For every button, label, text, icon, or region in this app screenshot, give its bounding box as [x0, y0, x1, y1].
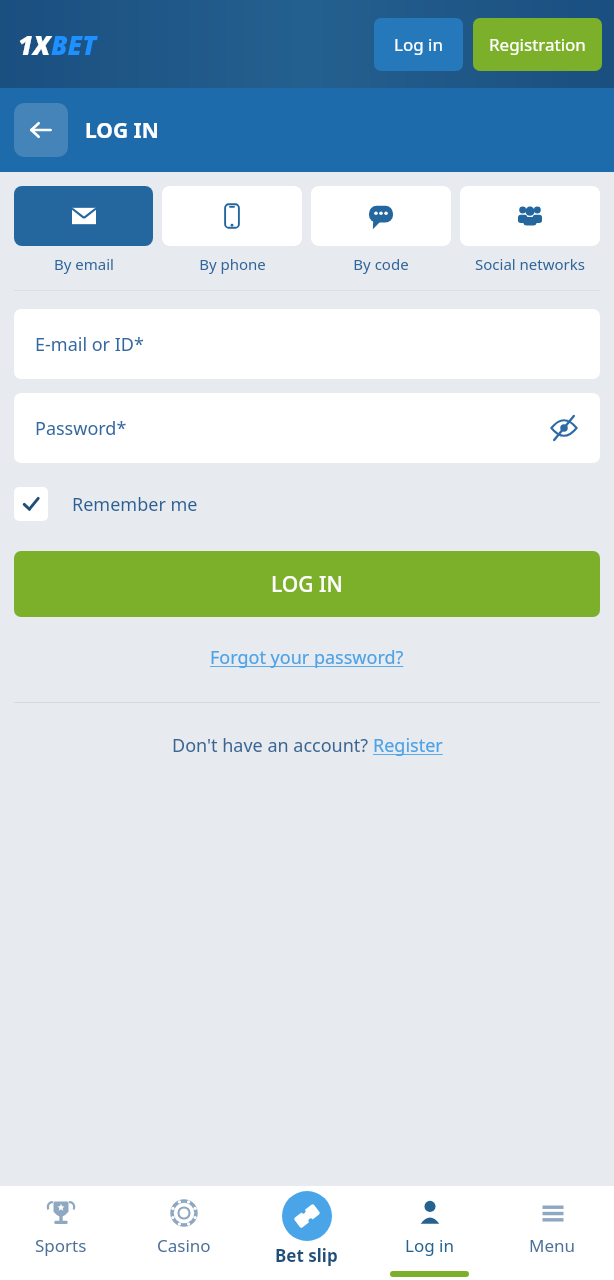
- button[interactable]: By email: [14, 186, 153, 274]
- staticText: BET: [51, 27, 97, 62]
- button[interactable]: Show password: [544, 408, 584, 448]
- staticText: Log in: [394, 33, 443, 56]
- button[interactable]: Log in: [368, 1186, 491, 1280]
- button[interactable]: Casino: [122, 1186, 245, 1280]
- button[interactable]: Back: [14, 103, 68, 157]
- button[interactable]: Log in: [374, 18, 463, 71]
- staticText: Social networks: [475, 254, 585, 274]
- button[interactable]: Bet slip: [245, 1186, 368, 1280]
- staticText: Log in: [405, 1234, 454, 1257]
- staticText: Register: [373, 733, 443, 758]
- staticText: Forgot your password?: [210, 645, 404, 670]
- button[interactable]: Register: [373, 733, 443, 758]
- staticText: Remember me: [72, 492, 198, 517]
- staticText: Registration: [489, 33, 586, 56]
- button[interactable]: Menu: [491, 1186, 614, 1280]
- staticText: By code: [353, 254, 409, 274]
- button[interactable]: LOG IN: [14, 551, 600, 617]
- staticText: Password*: [35, 416, 127, 441]
- button[interactable]: By code: [311, 186, 451, 274]
- button[interactable]: Password*: [14, 393, 600, 463]
- staticText: Casino: [157, 1234, 211, 1257]
- staticText: Don't have an account?: [172, 733, 373, 758]
- staticText: 1X: [18, 27, 51, 62]
- staticText: By phone: [199, 254, 266, 274]
- staticText: Sports: [35, 1234, 87, 1257]
- button[interactable]: Registration: [473, 18, 602, 71]
- button[interactable]: Sports: [0, 1186, 122, 1280]
- button[interactable]: Remember me: [14, 487, 198, 521]
- button[interactable]: Social networks: [460, 186, 600, 274]
- staticText: Menu: [529, 1234, 576, 1257]
- button[interactable]: By phone: [162, 186, 302, 274]
- button[interactable]: Forgot your password?: [206, 641, 408, 674]
- button[interactable]: E-mail or ID*: [14, 309, 600, 379]
- staticText: Bet slip: [275, 1244, 338, 1267]
- staticText: LOG IN: [85, 116, 159, 145]
- staticText: LOG IN: [271, 570, 343, 599]
- staticText: By email: [54, 254, 114, 274]
- staticText: E-mail or ID*: [35, 332, 144, 357]
